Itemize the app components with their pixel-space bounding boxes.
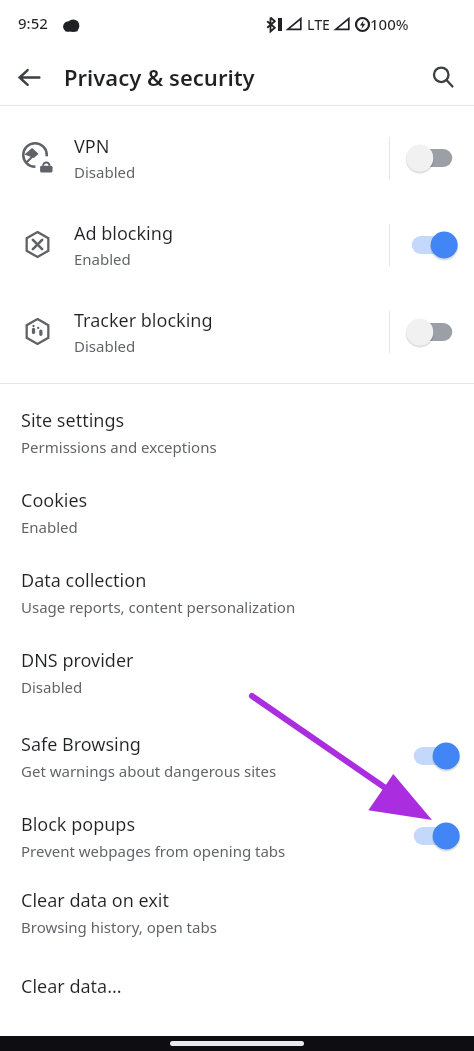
staticText: VPN bbox=[74, 134, 110, 159]
staticText: Prevent webpages from opening tabs bbox=[21, 841, 286, 861]
staticText: Safe Browsing bbox=[21, 732, 141, 757]
staticText: 100% bbox=[370, 14, 409, 34]
staticText: Site settings bbox=[21, 408, 125, 433]
staticText: Enabled bbox=[21, 517, 78, 537]
button[interactable]: Clear data... bbox=[0, 956, 474, 1036]
button[interactable]: Back bbox=[6, 54, 52, 100]
button[interactable]: Block popups bbox=[0, 796, 474, 876]
staticText: Browsing history, open tabs bbox=[21, 917, 217, 937]
button[interactable]: VPN bbox=[0, 114, 474, 201]
button[interactable] bbox=[390, 114, 474, 201]
staticText: Data collection bbox=[21, 568, 147, 593]
staticText: Disabled bbox=[74, 162, 136, 182]
button[interactable] bbox=[390, 288, 474, 375]
button[interactable]: Cookies bbox=[0, 476, 474, 556]
button[interactable]: DNS provider bbox=[0, 636, 474, 716]
staticText: Clear data on exit bbox=[21, 888, 169, 913]
staticText: Disabled bbox=[74, 336, 136, 356]
button[interactable]: Site settings bbox=[0, 396, 474, 476]
staticText: Disabled bbox=[21, 677, 83, 697]
button[interactable] bbox=[394, 796, 474, 876]
button[interactable]: Data collection bbox=[0, 556, 474, 636]
staticText: Permissions and exceptions bbox=[21, 437, 217, 457]
button[interactable]: Search bbox=[420, 54, 466, 100]
button[interactable] bbox=[170, 1041, 304, 1046]
button[interactable]: Tracker blocking bbox=[0, 288, 474, 375]
staticText: Privacy & security bbox=[64, 62, 255, 92]
button[interactable] bbox=[390, 201, 474, 288]
staticText: Enabled bbox=[74, 249, 131, 269]
staticText: Usage reports, content personalization bbox=[21, 597, 296, 617]
staticText: Ad blocking bbox=[74, 221, 173, 246]
staticText: Tracker blocking bbox=[74, 308, 213, 333]
staticText: Cookies bbox=[21, 488, 88, 513]
button[interactable] bbox=[394, 716, 474, 796]
button[interactable]: Clear data on exit bbox=[0, 876, 474, 956]
staticText: Get warnings about dangerous sites bbox=[21, 761, 277, 781]
button[interactable]: Ad blocking bbox=[0, 201, 474, 288]
button[interactable]: Safe Browsing bbox=[0, 716, 474, 796]
staticText: Clear data... bbox=[21, 974, 122, 999]
staticText: 9:52 bbox=[18, 13, 48, 33]
staticText: DNS provider bbox=[21, 648, 134, 673]
staticText: Block popups bbox=[21, 812, 136, 837]
staticText: LTE bbox=[307, 15, 330, 34]
